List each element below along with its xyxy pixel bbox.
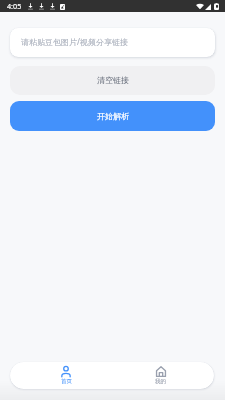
staticText: 4:05 (7, 1, 22, 11)
button[interactable]: 首页 (19, 366, 113, 385)
button[interactable]: 开始解析 (10, 101, 215, 131)
staticText: 请粘贴豆包图片/视频分享链接 (21, 36, 128, 47)
staticText: 清空链接 (97, 75, 129, 85)
staticText: 我的 (155, 378, 166, 385)
staticText: 开始解析 (97, 111, 129, 121)
staticText: 首页 (61, 378, 72, 385)
button[interactable]: 清空链接 (10, 66, 215, 95)
button[interactable]: 我的 (113, 366, 208, 385)
button[interactable]: 请粘贴豆包图片/视频分享链接 (10, 28, 215, 57)
